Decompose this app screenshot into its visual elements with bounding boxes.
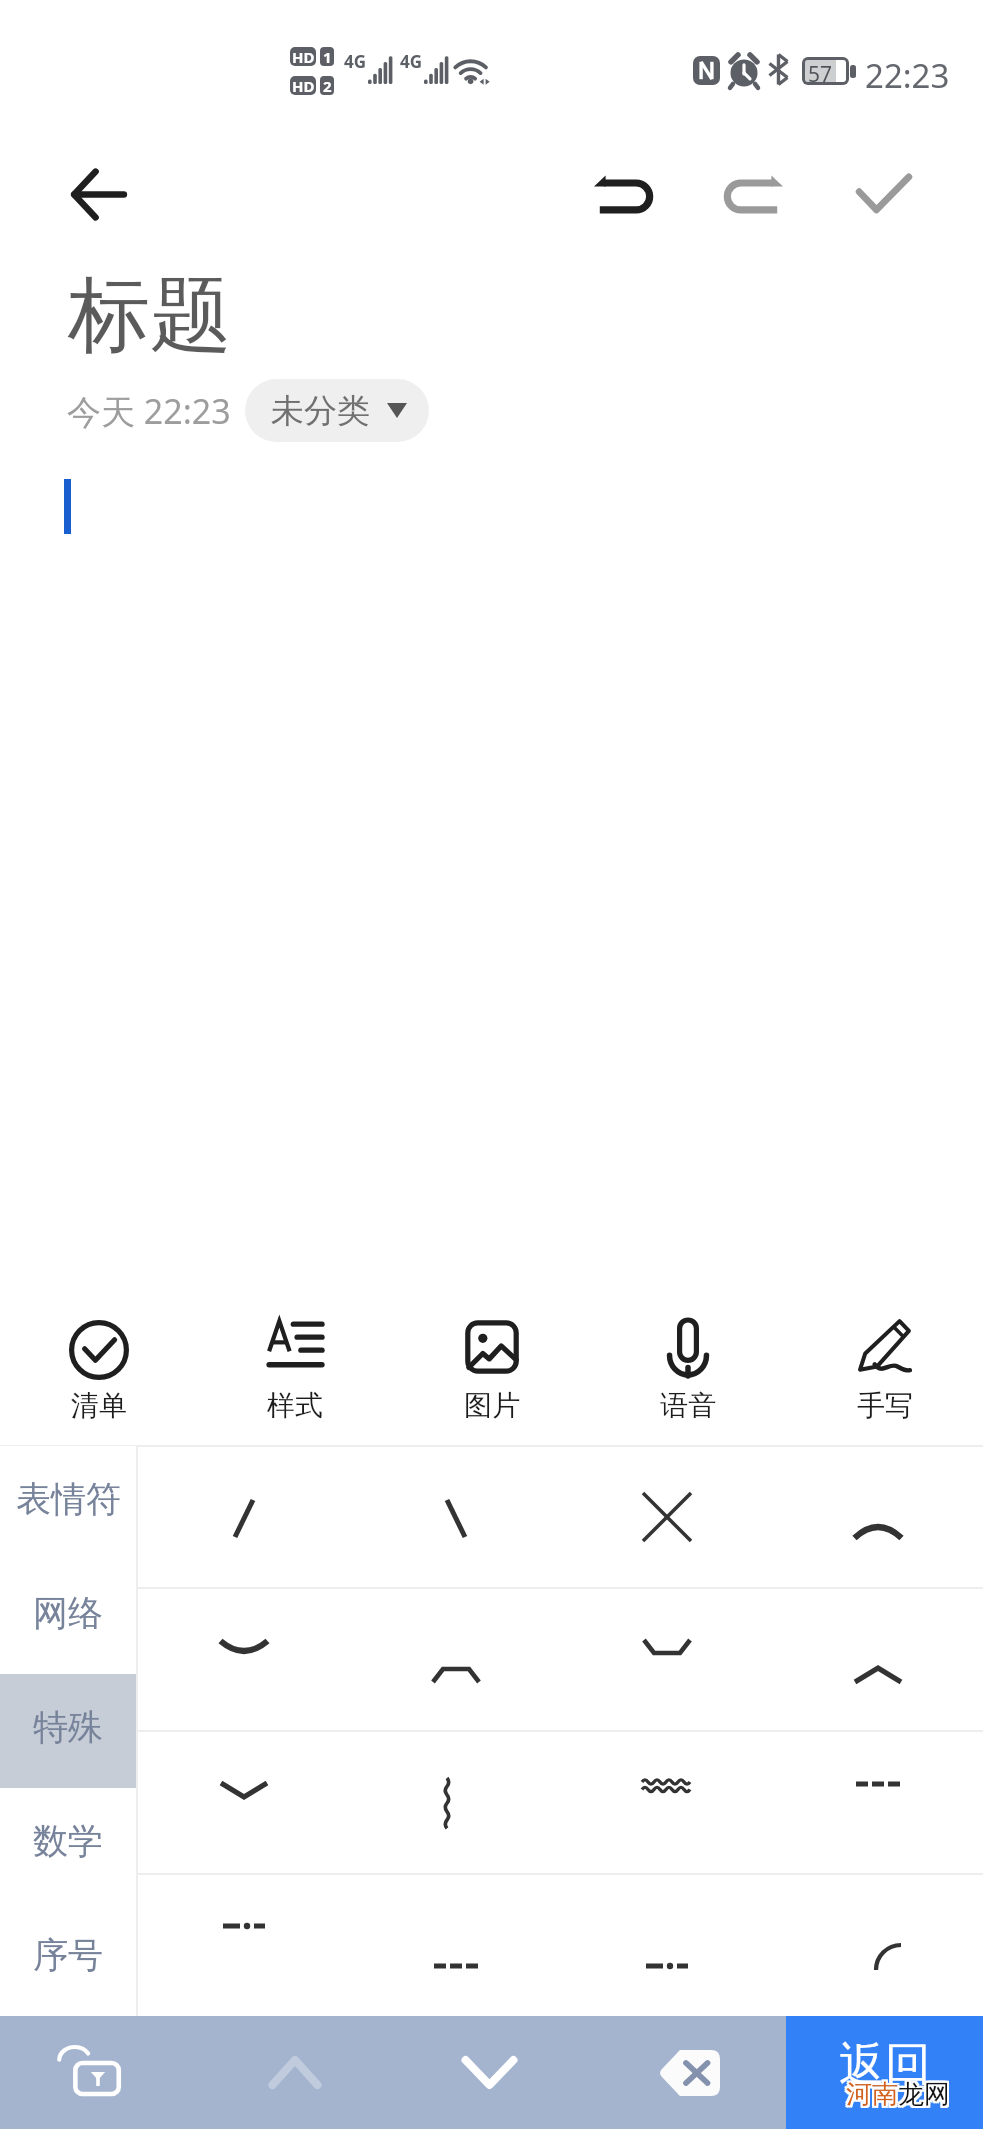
button[interactable]: 未分类 — [245, 379, 429, 442]
staticText: 河南龙网 — [844, 2076, 948, 2109]
staticText: 龙网 — [898, 2078, 950, 2111]
button[interactable]: 样式 — [197, 1292, 393, 1445]
staticText: HD — [292, 47, 315, 66]
button[interactable]: 表情符 — [0, 1446, 136, 1560]
staticText: 河南 — [846, 2078, 898, 2111]
staticText: 清单 — [71, 1388, 127, 1423]
button[interactable] — [561, 1875, 772, 2016]
staticText: 22:23 — [865, 53, 950, 98]
button[interactable]: 网络 — [0, 1560, 136, 1674]
staticText: 河南龙网 — [844, 2080, 948, 2113]
staticText: 河南龙网 — [846, 2080, 950, 2113]
button[interactable]: 返回 — [786, 2016, 983, 2129]
button[interactable] — [350, 1875, 561, 2016]
button[interactable]: 手写 — [787, 1292, 983, 1445]
staticText: 2 — [323, 76, 332, 95]
button[interactable] — [561, 1732, 772, 1873]
button[interactable] — [772, 1732, 983, 1873]
staticText: 4G — [344, 50, 367, 73]
staticText: 表情符 — [16, 1477, 121, 1521]
staticText: 未分类 — [271, 390, 370, 432]
button[interactable] — [138, 1446, 350, 1587]
staticText: 河南龙网 — [848, 2078, 952, 2111]
button[interactable]: Undo — [579, 150, 667, 238]
staticText: 手写 — [857, 1388, 913, 1423]
button[interactable] — [772, 1589, 983, 1730]
button[interactable] — [561, 1589, 772, 1730]
staticText: 图片 — [464, 1388, 520, 1423]
staticText: 语音 — [660, 1388, 716, 1423]
button[interactable] — [138, 1875, 350, 2016]
staticText: 河南龙网 — [848, 2076, 952, 2109]
staticText: 河南龙网 — [844, 2078, 948, 2111]
staticText: 4G — [400, 50, 423, 73]
button[interactable]: 特殊 — [0, 1674, 136, 1788]
button[interactable] — [138, 1732, 350, 1873]
button[interactable]: Redo — [710, 150, 798, 238]
staticText: 河南龙网 — [848, 2080, 952, 2113]
button[interactable] — [561, 1446, 772, 1587]
staticText: 标题 — [68, 264, 232, 367]
staticText: 今天 22:23 — [67, 388, 231, 434]
button[interactable]: Done — [840, 150, 928, 238]
button[interactable]: Back — [57, 152, 141, 236]
staticText: 1 — [323, 47, 332, 66]
button[interactable]: 语音 — [590, 1292, 786, 1445]
staticText: 网络 — [33, 1591, 103, 1635]
staticText: 数学 — [33, 1819, 103, 1863]
staticText: 57 — [808, 60, 833, 82]
button[interactable] — [772, 1446, 983, 1587]
staticText: 特殊 — [33, 1705, 103, 1749]
button[interactable]: Unlock keyboard — [44, 2016, 136, 2129]
staticText: 河南龙网 — [846, 2076, 950, 2109]
button[interactable] — [350, 1589, 561, 1730]
button[interactable]: Next page — [430, 2016, 548, 2129]
button[interactable] — [138, 1589, 350, 1730]
button[interactable]: Previous page — [236, 2016, 354, 2129]
button[interactable] — [350, 1446, 561, 1587]
staticText: 样式 — [267, 1388, 323, 1423]
button[interactable]: 图片 — [394, 1292, 590, 1445]
button[interactable]: Backspace — [630, 2016, 748, 2129]
staticText: 序号 — [33, 1933, 103, 1977]
button[interactable]: 序号 — [0, 1902, 136, 2016]
staticText: 返回 — [839, 2036, 931, 2094]
button[interactable] — [350, 1732, 561, 1873]
button[interactable] — [772, 1875, 983, 2016]
button[interactable]: 数学 — [0, 1788, 136, 1902]
button[interactable]: 清单 — [1, 1292, 197, 1445]
staticText: HD — [292, 76, 315, 95]
